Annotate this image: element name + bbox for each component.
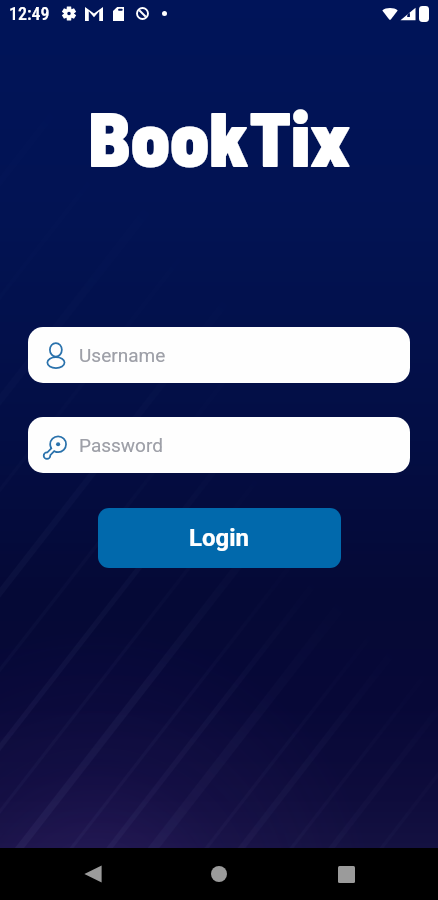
staticText: Login xyxy=(189,524,250,552)
button[interactable]: Username xyxy=(28,327,410,383)
staticText: Password xyxy=(79,434,163,456)
button[interactable]: Back xyxy=(65,848,121,900)
button[interactable]: Password xyxy=(28,417,410,473)
staticText: Username xyxy=(79,344,166,366)
button[interactable]: Login xyxy=(98,508,341,568)
staticText: 12:49 xyxy=(9,3,50,24)
button[interactable]: Recent apps xyxy=(318,848,374,900)
button[interactable]: Home xyxy=(191,848,247,900)
staticText: BookTix xyxy=(88,90,351,182)
